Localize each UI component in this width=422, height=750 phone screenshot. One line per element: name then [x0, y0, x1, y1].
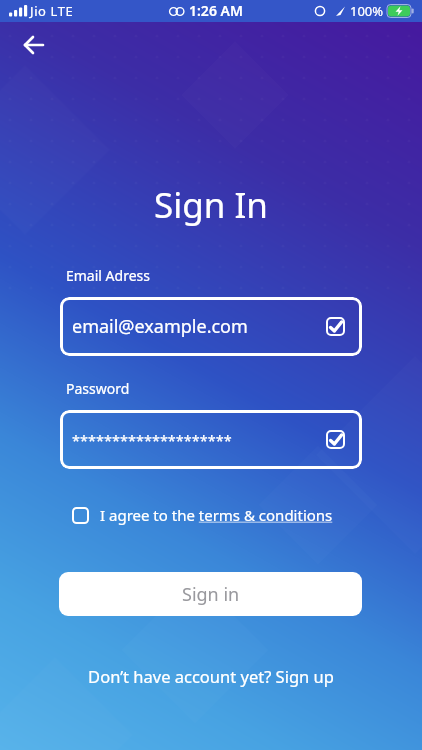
- staticText: 100%: [350, 2, 384, 20]
- staticText: Sign in: [182, 582, 240, 607]
- staticText: Jio LTE: [30, 2, 74, 20]
- staticText: Email Adress: [66, 266, 150, 285]
- button[interactable]: Sign in: [59, 572, 362, 616]
- button[interactable]: email@example.com: [60, 297, 362, 356]
- staticText: ********************: [72, 430, 232, 450]
- staticText: Don’t have account yet? Sign up: [88, 665, 334, 687]
- button[interactable]: Don’t have account yet? Sign up: [0, 665, 422, 687]
- button[interactable]: [18, 29, 50, 61]
- staticText: 1:26 AM: [189, 1, 243, 20]
- button[interactable]: I agree to the terms & conditions: [72, 505, 333, 525]
- button[interactable]: ********************: [60, 410, 362, 469]
- staticText: Password: [66, 379, 130, 398]
- staticText: email@example.com: [72, 314, 248, 339]
- staticText: Sign In: [154, 181, 268, 229]
- staticText: I agree to the terms & conditions: [100, 505, 333, 525]
